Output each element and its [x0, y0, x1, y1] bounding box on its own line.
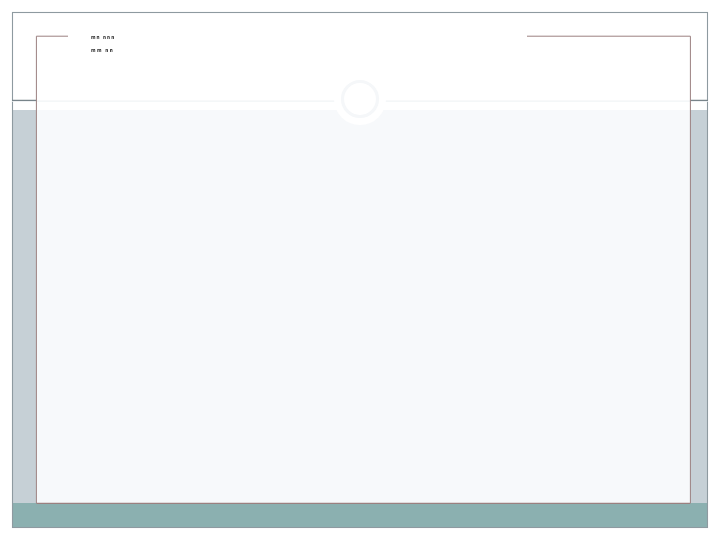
button[interactable]: Scroll up: [12, 110, 36, 503]
button[interactable]: Scroll down: [690, 110, 708, 503]
button[interactable]: Navigation bar: [12, 503, 708, 528]
staticText: mm nn: [91, 47, 115, 53]
other: Loading: [334, 73, 386, 125]
staticText: mn nnn: [91, 34, 116, 40]
button[interactable]: mn nnn: [91, 34, 116, 53]
